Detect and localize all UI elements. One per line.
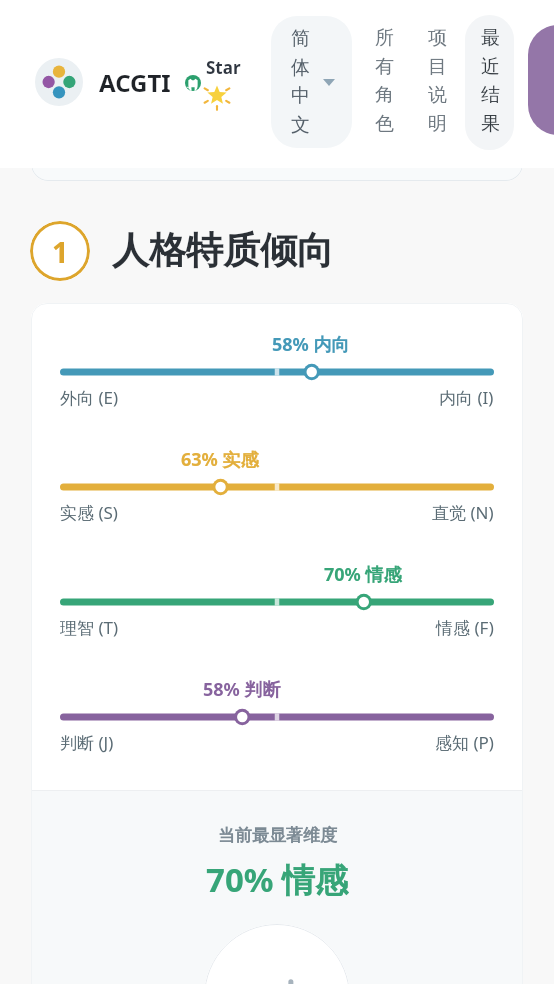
button[interactable]: 判断 (J) / 感知 (P): [31, 677, 523, 754]
button[interactable]: 实感 (S) / 直觉 (N): [31, 447, 523, 524]
staticText: 内向 (I): [439, 386, 494, 409]
button[interactable]: 简: [271, 16, 352, 148]
staticText: 情感 (F): [436, 616, 494, 639]
button[interactable]: ACGTI logo: [35, 58, 83, 106]
button[interactable]: Star on GitHub: [185, 53, 245, 113]
staticText: 角: [375, 83, 394, 107]
staticText: 中: [291, 84, 310, 108]
button[interactable]: 开始测试: [528, 25, 554, 135]
staticText: 外向 (E): [60, 386, 119, 409]
button[interactable]: 所: [359, 15, 408, 150]
staticText: 70% 情感: [206, 857, 349, 902]
button[interactable]: ACGTI: [99, 66, 171, 99]
staticText: 判断 (J): [60, 731, 114, 754]
button[interactable]: 最: [465, 15, 514, 150]
staticText: 感知 (P): [435, 731, 494, 754]
staticText: 63% 实感: [181, 447, 259, 472]
staticText: 实感 (S): [60, 501, 118, 524]
staticText: 当前最显著维度: [218, 825, 337, 846]
staticText: 明: [428, 112, 447, 136]
staticText: 所: [375, 26, 394, 50]
staticText: 说: [428, 83, 447, 107]
staticText: 目: [428, 55, 447, 79]
staticText: 有: [375, 55, 394, 79]
staticText: 果: [481, 112, 500, 136]
staticText: 人格特质倾向: [112, 227, 334, 274]
staticText: 70% 情感: [324, 562, 402, 587]
staticText: 项: [428, 26, 447, 50]
staticText: 色: [375, 112, 394, 136]
button[interactable]: 理智 (T) / 情感 (F): [31, 562, 523, 639]
staticText: 直觉 (N): [432, 501, 494, 524]
staticText: 1: [52, 232, 69, 271]
button[interactable]: 外向 (E) / 内向 (I): [31, 332, 523, 409]
staticText: 文: [291, 113, 310, 137]
staticText: 近: [481, 55, 500, 79]
staticText: 结: [481, 83, 500, 107]
staticText: 最: [481, 26, 500, 50]
staticText: 58% 判断: [203, 677, 281, 702]
staticText: 简: [291, 27, 310, 51]
staticText: 58% 内向: [272, 332, 350, 357]
staticText: 体: [291, 56, 310, 80]
staticText: Star: [206, 56, 241, 79]
staticText: 理智 (T): [60, 616, 119, 639]
button[interactable]: 项: [412, 15, 461, 150]
